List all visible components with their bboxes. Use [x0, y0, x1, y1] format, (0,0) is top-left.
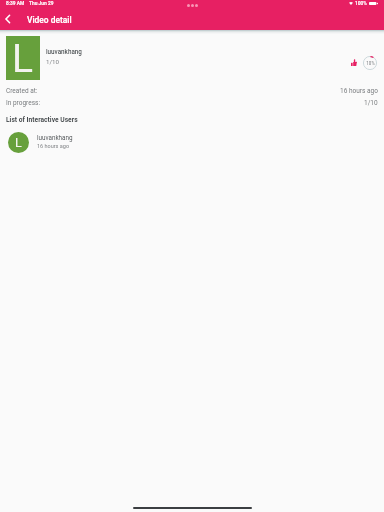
button[interactable]: Like [347, 56, 360, 69]
button[interactable]: Back [0, 11, 16, 27]
staticText: 8:39 AM [6, 0, 25, 6]
staticText: 10% [366, 61, 375, 66]
staticText: In progress: [6, 99, 40, 107]
staticText: Thu Jun 29 [29, 0, 54, 6]
staticText: List of Interactive Users [6, 116, 78, 124]
staticText: 100% [355, 0, 367, 6]
button[interactable]: Progress 10 percent [363, 56, 377, 70]
button[interactable]: L [0, 128, 384, 154]
staticText: luuvankhang [37, 134, 73, 141]
staticText: 16 hours ago [37, 143, 70, 149]
staticText: Created at: [6, 87, 38, 95]
staticText: L [15, 135, 22, 150]
staticText: 1/10 [46, 58, 59, 65]
staticText: Video detail [27, 15, 72, 25]
staticText: 16 hours ago [340, 87, 378, 95]
staticText: luuvankhang [46, 48, 82, 55]
staticText: L [12, 36, 34, 80]
staticText: 1/10 [364, 99, 378, 107]
